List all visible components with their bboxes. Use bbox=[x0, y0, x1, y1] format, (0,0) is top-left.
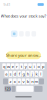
button[interactable]: b bbox=[26, 78, 30, 84]
staticText: n bbox=[31, 79, 33, 84]
button[interactable]: o bbox=[37, 63, 40, 69]
button[interactable]: j bbox=[30, 71, 34, 77]
button[interactable]: y bbox=[24, 63, 27, 69]
button[interactable]: w bbox=[7, 63, 10, 69]
staticText: c bbox=[18, 79, 20, 84]
button[interactable]: n bbox=[30, 78, 34, 84]
button[interactable]: u bbox=[28, 63, 32, 69]
staticText: p bbox=[42, 64, 44, 69]
button[interactable]: s bbox=[9, 71, 12, 77]
button[interactable]: d bbox=[13, 71, 17, 77]
staticText: v bbox=[22, 79, 24, 84]
button[interactable]: g bbox=[22, 71, 25, 77]
button[interactable] bbox=[3, 78, 8, 84]
staticText: a bbox=[5, 71, 7, 76]
button[interactable]: Add photo bbox=[11, 30, 17, 37]
staticText: l bbox=[40, 71, 41, 76]
staticText: What does your stock say? bbox=[0, 13, 46, 18]
button[interactable] bbox=[16, 86, 33, 92]
button[interactable]: i bbox=[32, 63, 36, 69]
staticText: z bbox=[9, 79, 11, 84]
button[interactable] bbox=[11, 86, 15, 92]
staticText: j bbox=[32, 71, 33, 76]
staticText: k bbox=[35, 71, 37, 76]
button[interactable]: 123 bbox=[4, 86, 11, 92]
staticText: e bbox=[12, 64, 14, 69]
button[interactable]: q bbox=[2, 63, 6, 69]
staticText: f bbox=[19, 71, 20, 76]
button[interactable]: c bbox=[17, 78, 21, 84]
button[interactable]: h bbox=[26, 71, 30, 77]
staticText: Share your answer bbox=[6, 53, 41, 58]
button[interactable] bbox=[34, 86, 43, 92]
button[interactable]: f bbox=[17, 71, 21, 77]
button[interactable]: r bbox=[15, 63, 19, 69]
button[interactable] bbox=[39, 78, 44, 84]
staticText: 123 bbox=[5, 86, 11, 91]
staticText: y bbox=[25, 64, 27, 69]
button[interactable]: l bbox=[39, 71, 43, 77]
staticText: x bbox=[14, 79, 16, 84]
button[interactable]: Share your answer bbox=[6, 51, 41, 59]
button[interactable]: z bbox=[9, 78, 12, 84]
staticText: t bbox=[21, 64, 22, 69]
staticText: s bbox=[9, 71, 11, 76]
button[interactable]: v bbox=[22, 78, 25, 84]
staticText: b bbox=[27, 79, 29, 84]
staticText: i bbox=[34, 64, 35, 69]
staticText: w bbox=[7, 64, 10, 69]
button[interactable]: t bbox=[19, 63, 23, 69]
staticText: d bbox=[14, 71, 16, 76]
staticText: h bbox=[27, 71, 29, 76]
button[interactable]: e bbox=[11, 63, 14, 69]
button[interactable]: x bbox=[13, 78, 17, 84]
staticText: r bbox=[16, 64, 18, 69]
staticText: q bbox=[3, 64, 5, 69]
staticText: 9:41 bbox=[3, 2, 10, 7]
button[interactable]: m bbox=[35, 78, 38, 84]
staticText: u bbox=[29, 64, 31, 69]
staticText: m bbox=[34, 79, 38, 84]
staticText: o bbox=[38, 64, 40, 69]
button[interactable]: p bbox=[41, 63, 45, 69]
button[interactable]: k bbox=[35, 71, 38, 77]
staticText: g bbox=[22, 71, 24, 76]
button[interactable]: a bbox=[4, 71, 8, 77]
